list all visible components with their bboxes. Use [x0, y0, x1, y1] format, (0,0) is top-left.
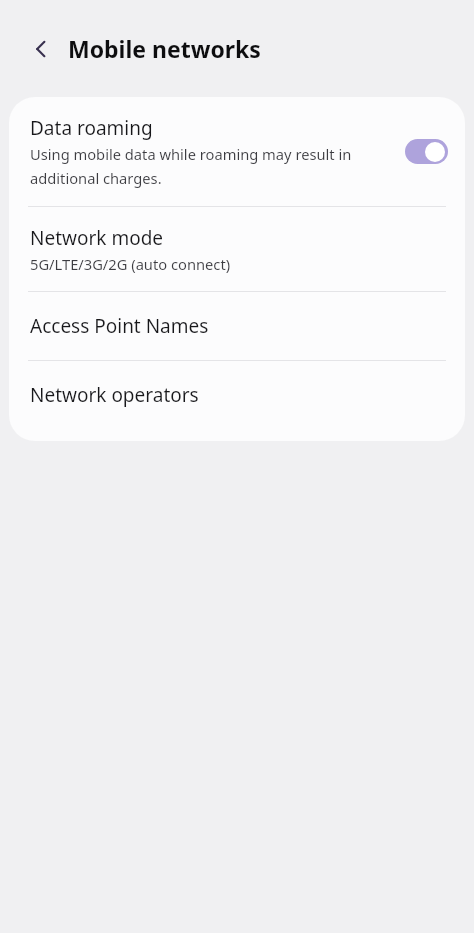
staticText: Network operators — [30, 382, 199, 408]
button[interactable]: Back — [22, 29, 62, 69]
button[interactable]: Access Point Names — [9, 292, 465, 360]
button[interactable]: Data roaming — [9, 97, 465, 206]
button[interactable]: Data roaming toggle — [405, 139, 448, 164]
staticText: 5G/LTE/3G/2G (auto connect) — [30, 254, 231, 274]
staticText: Mobile networks — [68, 33, 261, 64]
staticText: Data roaming — [30, 115, 153, 141]
button[interactable]: Network mode — [9, 207, 465, 291]
staticText: Using mobile data while roaming may resu… — [30, 144, 395, 188]
button[interactable]: Network operators — [9, 361, 465, 429]
staticText: Access Point Names — [30, 313, 209, 339]
staticText: Network mode — [30, 225, 164, 251]
